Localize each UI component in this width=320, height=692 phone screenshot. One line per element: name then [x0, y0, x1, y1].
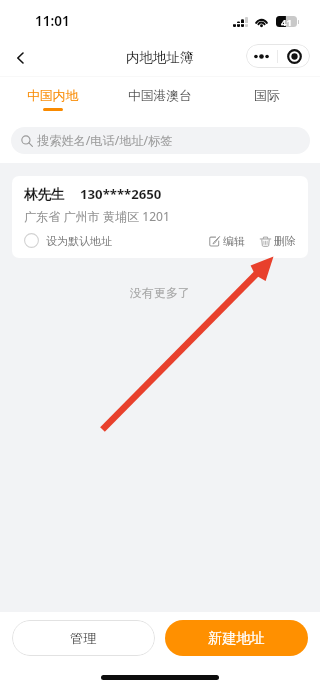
- button[interactable]: Back: [0, 36, 40, 76]
- staticText: 中国港澳台: [128, 88, 192, 104]
- staticText: 广东省 广州市 黄埔区 1201: [24, 208, 170, 225]
- staticText: 林先生: [24, 186, 65, 203]
- staticText: 编辑: [223, 234, 245, 248]
- button[interactable]: 设为默认地址: [24, 233, 112, 248]
- button[interactable]: More options: [246, 44, 277, 68]
- button[interactable]: 国际: [213, 79, 320, 116]
- staticText: 新建地址: [208, 629, 265, 647]
- staticText: 130****2650: [80, 185, 162, 203]
- button[interactable]: Close mini program: [278, 44, 310, 68]
- button[interactable]: 管理: [12, 620, 155, 656]
- button[interactable]: 林先生: [12, 176, 308, 258]
- button[interactable]: 编辑: [209, 234, 245, 248]
- button[interactable]: 搜索姓名/电话/地址/标签: [11, 127, 310, 154]
- staticText: 管理: [70, 630, 97, 647]
- staticText: 设为默认地址: [46, 234, 112, 248]
- staticText: 删除: [274, 234, 296, 248]
- staticText: 内地地址簿: [126, 49, 194, 66]
- staticText: 中国内地: [27, 88, 79, 104]
- staticText: 11:01: [35, 12, 70, 30]
- button[interactable]: 新建地址: [165, 620, 308, 656]
- staticText: 搜索姓名/电话/地址/标签: [37, 132, 173, 149]
- button[interactable]: 中国港澳台: [106, 79, 213, 116]
- staticText: 没有更多了: [0, 285, 320, 300]
- button[interactable]: 删除: [260, 234, 296, 248]
- staticText: 41: [281, 16, 292, 27]
- button[interactable]: 中国内地: [0, 79, 106, 116]
- staticText: 国际: [254, 88, 280, 104]
